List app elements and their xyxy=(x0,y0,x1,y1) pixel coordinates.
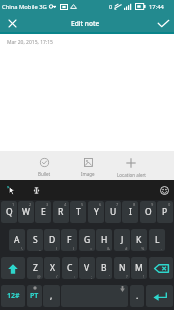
button[interactable]: Move cursor xyxy=(30,184,42,196)
button[interactable]: Y xyxy=(88,201,104,223)
staticText: J xyxy=(121,234,124,246)
staticText: D xyxy=(49,234,56,246)
button[interactable]: Language xyxy=(27,285,42,307)
button[interactable]: M xyxy=(131,257,147,279)
button[interactable]: Comma xyxy=(43,285,60,307)
staticText: B xyxy=(101,262,107,274)
staticText: China Mobile 3G xyxy=(2,3,47,11)
staticText: 8 xyxy=(133,202,136,207)
button[interactable]: Close xyxy=(0,13,24,34)
staticText: # xyxy=(125,246,128,251)
staticText: I xyxy=(129,206,132,218)
staticText: & xyxy=(107,246,110,251)
staticText: _ xyxy=(39,246,41,251)
button[interactable]: Shift xyxy=(1,257,25,279)
button[interactable]: Q xyxy=(1,201,17,223)
button[interactable]: L xyxy=(149,229,165,251)
staticText: 17:44 xyxy=(149,3,164,11)
button[interactable]: S xyxy=(27,229,43,251)
staticText: ? xyxy=(126,274,128,279)
staticText: O xyxy=(145,206,152,218)
button[interactable]: Backspace xyxy=(149,257,173,279)
staticText: F xyxy=(67,234,72,246)
staticText: E xyxy=(41,206,46,218)
staticText: V xyxy=(84,262,90,274)
button[interactable]: Select text xyxy=(5,184,17,196)
staticText: / xyxy=(56,274,58,279)
staticText: Edit note xyxy=(71,19,100,28)
button[interactable]: P xyxy=(157,201,173,223)
button[interactable]: R xyxy=(53,201,69,223)
staticText: 7 xyxy=(116,202,119,207)
staticText: Y xyxy=(94,206,99,218)
button[interactable]: Emoji xyxy=(158,184,170,196)
button[interactable]: G xyxy=(79,229,95,251)
button[interactable]: U xyxy=(105,201,121,223)
button[interactable]: V xyxy=(79,257,95,279)
staticText: PT xyxy=(30,291,39,301)
button[interactable]: Image xyxy=(66,158,110,177)
staticText: W xyxy=(22,206,30,218)
staticText: 4 xyxy=(64,202,67,207)
staticText: , xyxy=(50,290,53,302)
button[interactable]: O xyxy=(140,201,156,223)
button[interactable]: W xyxy=(18,201,34,223)
button[interactable]: Enter xyxy=(146,285,173,307)
staticText: ( xyxy=(56,246,58,251)
staticText: Bullet xyxy=(38,171,51,177)
button[interactable]: Bullet xyxy=(22,158,66,177)
staticText: C xyxy=(67,262,73,274)
button[interactable]: N xyxy=(114,257,130,279)
staticText: Image xyxy=(81,171,95,177)
staticText: 5 xyxy=(81,202,84,207)
button[interactable]: Location alert xyxy=(109,158,153,178)
button[interactable]: T xyxy=(70,201,86,223)
button[interactable]: X xyxy=(44,257,60,279)
staticText: H xyxy=(101,234,108,246)
staticText: A xyxy=(14,234,20,246)
staticText: ) xyxy=(73,246,75,251)
staticText: : xyxy=(74,274,76,279)
button[interactable]: I xyxy=(122,201,138,223)
staticText: . xyxy=(136,290,139,302)
staticText: Mar 20, 2015, 17:15 xyxy=(7,39,53,46)
staticText: . xyxy=(161,246,163,251)
button[interactable]: K xyxy=(131,229,147,251)
button[interactable]: Period xyxy=(130,285,144,307)
staticText: Z xyxy=(33,262,38,274)
staticText: T xyxy=(76,206,81,218)
button[interactable]: C xyxy=(62,257,78,279)
staticText: = xyxy=(90,246,93,251)
staticText: P xyxy=(162,206,168,218)
staticText: G xyxy=(84,234,91,246)
staticText: M xyxy=(135,262,143,274)
staticText: 2 xyxy=(29,202,32,207)
staticText: ; xyxy=(91,274,93,279)
button[interactable]: A xyxy=(9,229,25,251)
button[interactable]: F xyxy=(61,229,77,251)
button[interactable]: H xyxy=(96,229,112,251)
button[interactable]: Numbers and symbols xyxy=(1,285,25,307)
staticText: S xyxy=(33,234,38,246)
staticText: 6 xyxy=(99,202,102,207)
button[interactable]: E xyxy=(35,201,51,223)
button[interactable]: Z xyxy=(27,257,43,279)
button[interactable]: B xyxy=(96,257,112,279)
button[interactable]: Space xyxy=(61,285,128,307)
button[interactable]: Done xyxy=(150,13,174,34)
staticText: % xyxy=(141,246,145,251)
staticText: Location alert xyxy=(117,172,146,178)
button[interactable]: J xyxy=(114,229,130,251)
staticText: L xyxy=(155,234,160,246)
staticText: 12# xyxy=(7,291,20,301)
staticText: 0 xyxy=(109,3,113,11)
staticText: 0 xyxy=(168,202,171,207)
staticText: 1 xyxy=(12,202,15,207)
staticText: \ xyxy=(21,246,23,251)
staticText: U xyxy=(110,206,117,218)
staticText: K xyxy=(136,234,142,246)
staticText: 3 xyxy=(46,202,49,207)
staticText: @ xyxy=(37,274,41,279)
button[interactable]: D xyxy=(44,229,60,251)
staticText: ' xyxy=(109,274,110,279)
